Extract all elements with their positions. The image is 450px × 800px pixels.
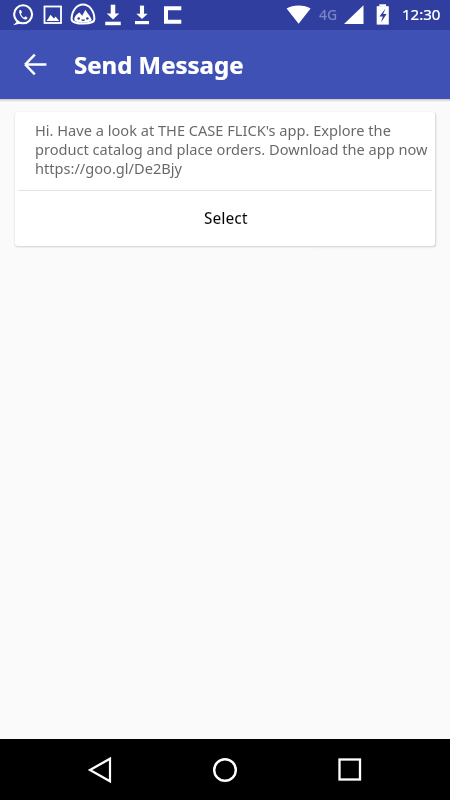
staticText: Select — [204, 208, 248, 229]
button[interactable]: Recent apps — [326, 746, 374, 794]
staticText: 4G — [319, 5, 338, 24]
staticText: 12:30 — [402, 4, 441, 24]
button[interactable]: Back — [76, 746, 124, 794]
button[interactable]: Select — [15, 191, 435, 246]
button[interactable]: Home — [201, 746, 249, 794]
staticText: Send Message — [74, 48, 244, 81]
button[interactable]: Navigate up — [12, 41, 59, 88]
staticText: Hi. Have a look at THE CASE FLICK's app.… — [35, 120, 429, 178]
